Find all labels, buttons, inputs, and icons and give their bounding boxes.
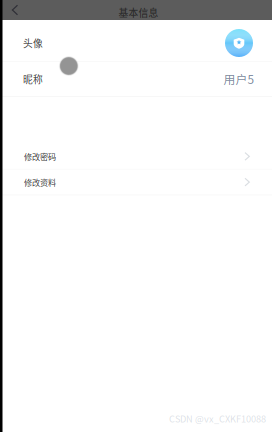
- button[interactable]: 昵称: [0, 62, 272, 96]
- staticText: 头像: [23, 36, 43, 50]
- button[interactable]: 修改密码: [0, 144, 272, 169]
- button[interactable]: Back: [0, 0, 24, 20]
- staticText: 昵称: [23, 72, 43, 86]
- staticText: 修改资料: [24, 176, 56, 188]
- staticText: CSDN @vx_CXKF10088: [169, 412, 266, 425]
- button[interactable]: 修改资料: [0, 170, 272, 195]
- staticText: 基本信息: [118, 5, 158, 20]
- button[interactable]: 头像: [0, 20, 272, 61]
- staticText: 修改密码: [24, 150, 56, 162]
- staticText: 用户5: [223, 70, 254, 88]
